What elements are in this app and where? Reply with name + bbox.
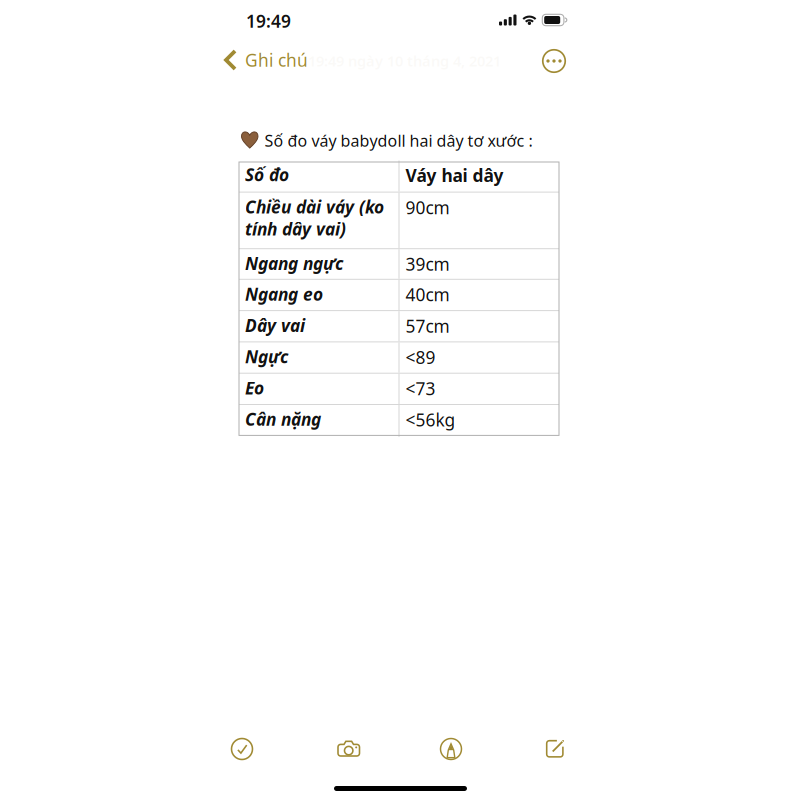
staticText: Cân nặng xyxy=(245,407,321,431)
staticText: Ngang eo xyxy=(245,282,323,306)
button[interactable]: New Note xyxy=(523,727,587,771)
staticText: Eo xyxy=(245,376,264,400)
staticText: <56kg xyxy=(405,408,455,431)
button[interactable]: Ghi chú xyxy=(224,43,308,77)
staticText: Ghi chú xyxy=(245,48,308,71)
button[interactable]: More xyxy=(542,49,566,73)
button[interactable]: Markup xyxy=(419,727,483,771)
staticText: Số đo váy babydoll hai dây tơ xước : xyxy=(264,130,532,151)
staticText: <89 xyxy=(405,346,435,369)
staticText: 57cm xyxy=(405,314,449,337)
button[interactable]: Camera xyxy=(317,727,381,771)
staticText: 19:49 xyxy=(246,9,291,32)
staticText: 90cm xyxy=(405,196,449,219)
staticText: Váy hai dây xyxy=(405,164,503,187)
staticText: tính dây vai) xyxy=(245,217,346,241)
staticText: <73 xyxy=(405,377,435,400)
staticText: 40cm xyxy=(405,283,449,306)
button[interactable]: Checklist xyxy=(210,727,274,771)
staticText: Ngực xyxy=(245,345,288,368)
staticText: Số đo xyxy=(245,163,289,186)
staticText: Chiều dài váy (ko xyxy=(245,195,384,218)
staticText: Ngang ngực xyxy=(245,251,343,275)
staticText: Dây vai xyxy=(245,313,305,337)
staticText: 39cm xyxy=(405,252,449,275)
